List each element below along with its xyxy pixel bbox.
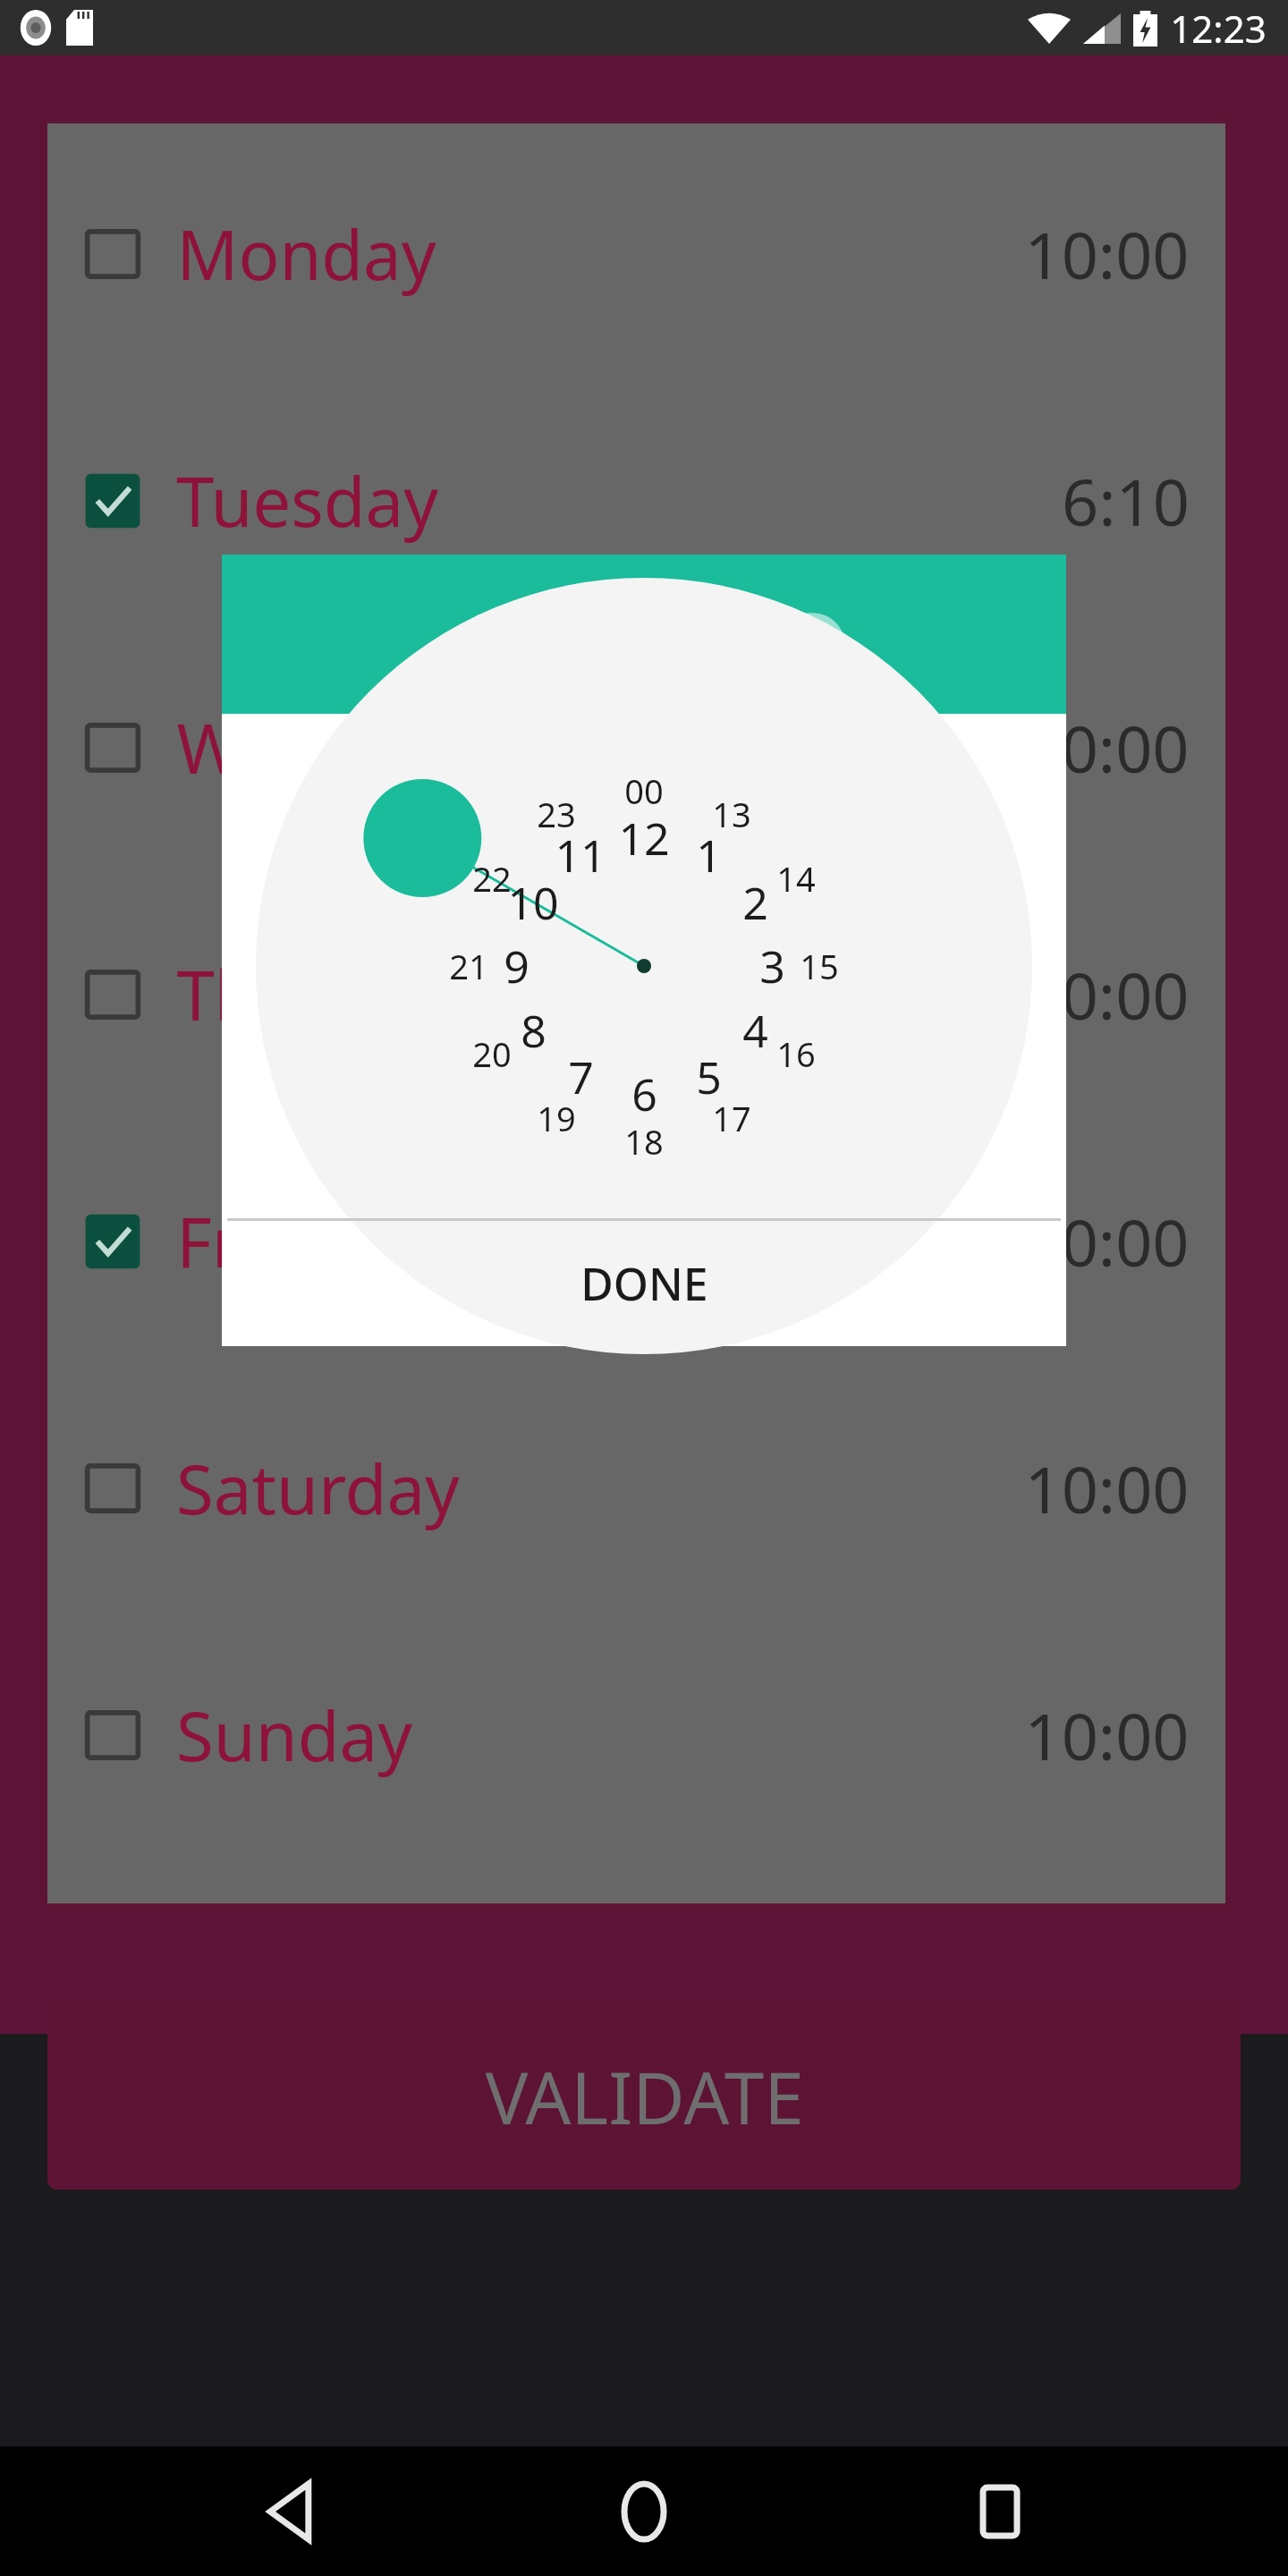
button[interactable]: 18: [604, 1101, 684, 1182]
staticText: Sunday: [176, 1689, 412, 1782]
staticText: 10:00: [1024, 1445, 1190, 1532]
button[interactable]: 21: [428, 926, 509, 1006]
staticText: 9: [504, 936, 530, 996]
staticText: 00: [624, 767, 664, 814]
button[interactable]: Home: [577, 2446, 711, 2576]
button[interactable]: 00: [604, 750, 684, 831]
button[interactable]: 1: [664, 810, 753, 900]
staticText: 10:00: [1024, 951, 1190, 1038]
button[interactable]: 17: [691, 1078, 772, 1158]
button[interactable]: Unchecked: [47, 131, 1225, 377]
staticText: Friday: [176, 1195, 372, 1288]
button[interactable]: 14: [756, 838, 836, 919]
staticText: Tuesday: [176, 454, 438, 547]
button[interactable]: 5: [664, 1032, 753, 1122]
staticText: 11: [555, 825, 606, 885]
staticText: 6: [631, 1063, 657, 1124]
button[interactable]: 2: [710, 858, 800, 947]
staticText: 10: [429, 555, 623, 714]
staticText: 10: [507, 872, 559, 933]
staticText: :: [623, 555, 665, 714]
button[interactable]: Unchecked: [83, 1459, 142, 1518]
staticText: 21: [449, 943, 488, 989]
button[interactable]: 11: [536, 810, 625, 900]
button[interactable]: VALIDATE: [47, 2002, 1241, 2190]
staticText: 4: [742, 1000, 768, 1061]
button[interactable]: 7: [536, 1032, 625, 1122]
button[interactable]: 3: [727, 921, 817, 1011]
staticText: 2: [742, 872, 768, 933]
staticText: DONE: [580, 1253, 708, 1314]
button[interactable]: 10: [222, 555, 1066, 714]
button[interactable]: Unchecked: [47, 624, 1225, 871]
button[interactable]: 22: [452, 838, 532, 919]
staticText: 13: [712, 791, 751, 837]
button[interactable]: 23: [516, 774, 597, 854]
button[interactable]: 15: [779, 926, 860, 1006]
button[interactable]: 16: [756, 1013, 836, 1094]
staticText: 22: [472, 855, 512, 902]
button[interactable]: 8: [488, 986, 578, 1075]
staticText: 20: [472, 1030, 512, 1077]
staticText: 14: [776, 855, 816, 902]
staticText: Saturday: [176, 1442, 460, 1535]
button[interactable]: Unchecked: [83, 1706, 142, 1765]
staticText: 10:00: [1024, 704, 1190, 792]
staticText: 7: [568, 1046, 594, 1107]
button[interactable]: 6: [599, 1049, 689, 1139]
button[interactable]: Checked: [83, 1212, 142, 1271]
button[interactable]: Back: [222, 2446, 356, 2576]
button[interactable]: 20: [452, 1013, 532, 1094]
button[interactable]: Checked: [47, 377, 1225, 624]
staticText: 10:00: [1024, 210, 1190, 298]
staticText: 12:23: [1170, 3, 1267, 54]
button[interactable]: Unchecked: [47, 1365, 1225, 1612]
staticText: 3: [759, 936, 785, 996]
staticText: 19: [537, 1095, 576, 1141]
staticText: 18: [624, 1118, 664, 1165]
staticText: 5: [696, 1046, 722, 1107]
button[interactable]: Checked: [83, 471, 142, 530]
button[interactable]: 19: [516, 1078, 597, 1158]
button[interactable]: 10: [488, 858, 578, 947]
button[interactable]: Unchecked: [83, 225, 142, 284]
staticText: Wednesday: [176, 701, 547, 794]
staticText: 16: [776, 1030, 816, 1077]
button[interactable]: 4: [710, 986, 800, 1075]
button[interactable]: Checked: [47, 1118, 1225, 1365]
button[interactable]: 13: [691, 774, 772, 854]
staticText: 10:00: [1024, 1198, 1190, 1285]
button[interactable]: Recents: [933, 2446, 1067, 2576]
staticText: 10:00: [1024, 1691, 1190, 1779]
staticText: VALIDATE: [485, 2047, 804, 2145]
button[interactable]: Unchecked: [47, 1612, 1225, 1859]
button[interactable]: 12: [599, 793, 689, 883]
staticText: Monday: [176, 208, 436, 301]
button[interactable]: DONE: [222, 1221, 1066, 1346]
staticText: 8: [521, 1000, 547, 1061]
staticText: 6:10: [1062, 457, 1190, 545]
button[interactable]: Unchecked: [83, 718, 142, 777]
staticText: 1: [696, 825, 722, 885]
staticText: Thursday: [176, 948, 474, 1041]
staticText: 17: [712, 1095, 751, 1141]
button[interactable]: Unchecked: [47, 871, 1225, 1118]
staticText: 12: [618, 808, 670, 869]
button[interactable]: Unchecked: [83, 965, 142, 1024]
staticText: 10: [665, 555, 860, 714]
button[interactable]: 9: [471, 921, 561, 1011]
staticText: 23: [537, 791, 576, 837]
staticText: 15: [800, 943, 839, 989]
